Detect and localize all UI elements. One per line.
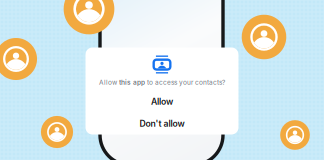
button[interactable]: Don't allow [85,112,238,134]
staticText: Allow this app to access your contacts? [99,78,225,86]
button[interactable]: Allow [85,90,238,112]
staticText: Don't allow [139,118,184,129]
staticText: Allow [151,96,173,107]
